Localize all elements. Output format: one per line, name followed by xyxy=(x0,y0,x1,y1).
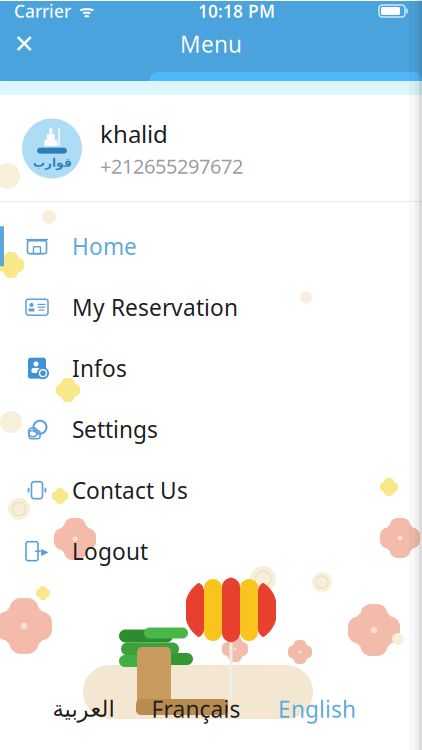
button[interactable]: English xyxy=(268,686,366,732)
staticText: قوارب xyxy=(32,156,71,169)
button[interactable]: Contact Us xyxy=(0,460,422,521)
staticText: +212655297672 xyxy=(100,153,243,179)
staticText: Settings xyxy=(72,414,158,444)
staticText: 10:18 PM xyxy=(198,0,275,22)
button[interactable]: Infos xyxy=(0,338,422,399)
staticText: Logout xyxy=(72,536,148,566)
button[interactable]: Français xyxy=(141,686,250,732)
button[interactable]: Settings xyxy=(0,399,422,460)
staticText: Contact Us xyxy=(72,475,188,505)
staticText: Carrier xyxy=(14,0,71,22)
staticText: ᯤ xyxy=(71,0,94,22)
button[interactable]: ▸ xyxy=(0,521,422,582)
staticText: Infos xyxy=(72,353,127,383)
staticText: ✕ xyxy=(13,30,34,58)
staticText: English xyxy=(278,694,356,724)
button[interactable]: Home xyxy=(0,216,422,277)
staticText: Français xyxy=(151,694,240,724)
staticText: العربية xyxy=(52,696,114,722)
staticText: My Reservation xyxy=(72,292,238,322)
staticText: Menu xyxy=(180,29,242,59)
button[interactable]: My Reservation xyxy=(0,277,422,338)
button[interactable]: العربية xyxy=(42,688,124,730)
staticText: khalid xyxy=(100,118,168,150)
staticText: ▸ xyxy=(41,543,48,559)
button[interactable]: Close xyxy=(0,22,48,66)
staticText: Home xyxy=(72,231,137,261)
